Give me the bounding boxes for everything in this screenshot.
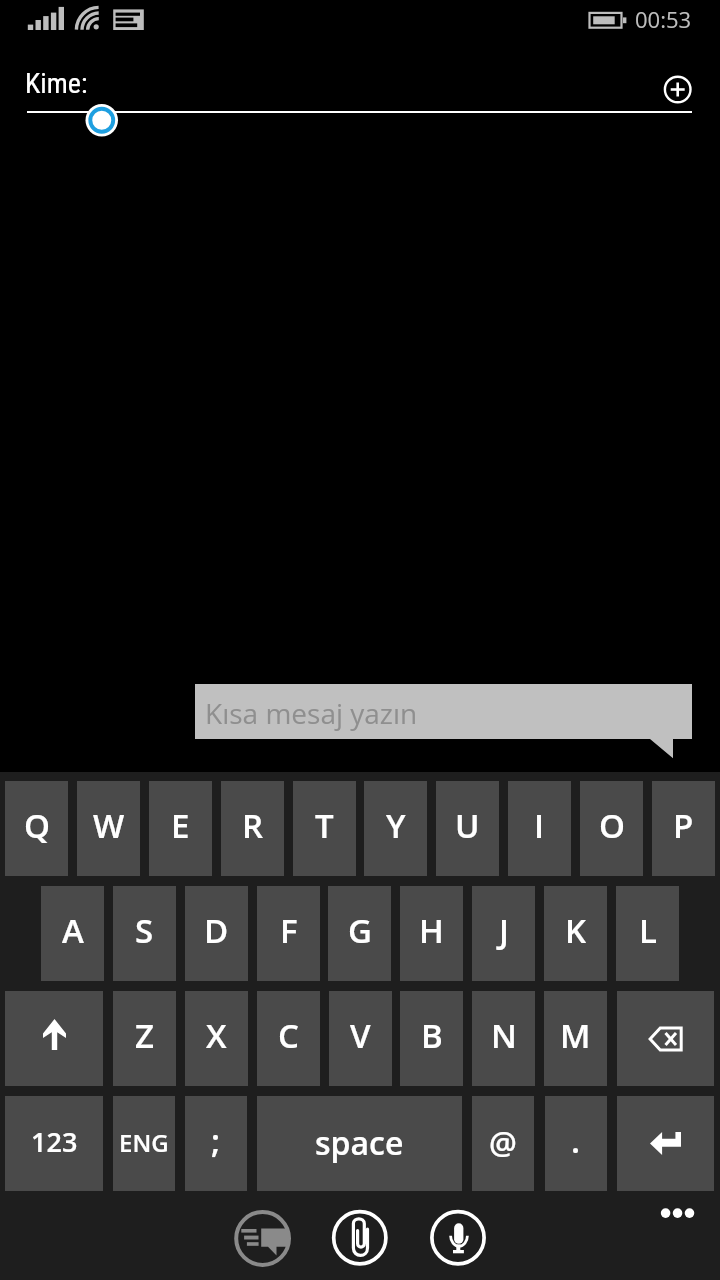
button[interactable]: C [257, 991, 320, 1086]
button[interactable]: space [257, 1096, 462, 1191]
button[interactable]: I [508, 781, 571, 876]
button[interactable]: 123 [5, 1096, 103, 1191]
button[interactable]: F [257, 886, 320, 981]
button[interactable]: S [113, 886, 176, 981]
staticText: Y [386, 803, 406, 848]
staticText: 00:53 [635, 4, 692, 34]
button[interactable]: U [436, 781, 499, 876]
staticText: O [599, 803, 625, 848]
staticText: M [560, 1013, 591, 1058]
staticText: W [93, 803, 125, 848]
button[interactable]: Quick message [230, 1206, 296, 1272]
staticText: R [242, 803, 264, 848]
staticText: U [455, 803, 480, 848]
button[interactable]: ; [185, 1096, 247, 1191]
button[interactable]: W [77, 781, 140, 876]
staticText: B [421, 1013, 443, 1058]
button[interactable]: Q [5, 781, 68, 876]
button[interactable]: D [185, 886, 248, 981]
staticText: G [348, 908, 372, 953]
staticText: F [280, 908, 298, 953]
staticText: S [135, 908, 154, 953]
staticText: ; [211, 1118, 221, 1163]
staticText: K [565, 908, 587, 953]
button[interactable]: E [149, 781, 212, 876]
staticText: Kısa mesaj yazın [205, 694, 418, 732]
button[interactable]: O [580, 781, 643, 876]
staticText: C [278, 1013, 299, 1058]
button[interactable]: Y [364, 781, 427, 876]
staticText: ENG [119, 1126, 169, 1159]
button[interactable]: @ [472, 1096, 534, 1191]
staticText: I [534, 803, 545, 848]
button[interactable]: R [221, 781, 284, 876]
staticText: N [491, 1013, 517, 1058]
button[interactable]: X [185, 991, 248, 1086]
button[interactable]: T [293, 781, 356, 876]
button[interactable]: Add recipient [654, 66, 702, 114]
staticText: P [673, 803, 694, 848]
button[interactable]: Backspace [617, 991, 714, 1086]
button[interactable]: G [328, 886, 391, 981]
staticText: @ [489, 1121, 517, 1163]
staticText: J [499, 908, 509, 953]
staticText: . [571, 1118, 581, 1163]
staticText: A [62, 908, 84, 953]
button[interactable]: Z [113, 991, 176, 1086]
button[interactable]: A [41, 886, 104, 981]
button[interactable]: J [472, 886, 535, 981]
staticText: V [350, 1013, 371, 1058]
button[interactable]: Attach [332, 1210, 388, 1266]
button[interactable]: L [616, 886, 679, 981]
button[interactable]: Voice message [430, 1210, 486, 1266]
button[interactable]: M [544, 991, 607, 1086]
button[interactable]: Enter [617, 1096, 714, 1191]
button[interactable]: ENG [113, 1096, 175, 1191]
button[interactable]: V [329, 991, 392, 1086]
staticText: Kime: [25, 67, 88, 100]
staticText: H [419, 908, 444, 953]
staticText: T [315, 803, 334, 848]
button[interactable]: Shift [5, 991, 103, 1086]
staticText: Z [135, 1013, 154, 1058]
button[interactable]: More options [650, 1193, 704, 1233]
staticText: L [639, 908, 657, 953]
staticText: space [315, 1121, 404, 1165]
staticText: Q [24, 803, 50, 848]
button[interactable]: . [545, 1096, 607, 1191]
button[interactable]: H [400, 886, 463, 981]
button[interactable]: N [472, 991, 535, 1086]
staticText: E [171, 803, 190, 848]
button[interactable]: P [652, 781, 715, 876]
button[interactable]: K [544, 886, 607, 981]
staticText: X [206, 1013, 227, 1058]
staticText: D [204, 908, 229, 953]
staticText: 123 [31, 1123, 78, 1160]
button[interactable]: B [400, 991, 463, 1086]
